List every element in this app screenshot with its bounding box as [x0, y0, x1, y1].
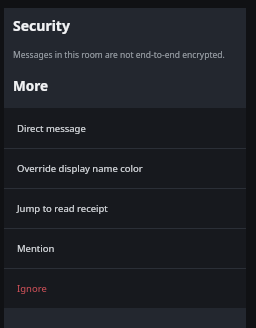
button[interactable]: Ignore — [4, 269, 246, 308]
button[interactable]: Override display name color — [4, 149, 246, 188]
staticText: Security — [13, 16, 70, 35]
staticText: More — [13, 77, 48, 95]
button[interactable]: Jump to read receipt — [4, 189, 246, 228]
staticText: Direct message — [17, 122, 86, 135]
staticText: Override display name color — [17, 162, 143, 175]
button[interactable]: Mention — [4, 229, 246, 268]
staticText: Mention — [17, 242, 55, 255]
staticText: Jump to read receipt — [17, 202, 108, 215]
staticText: Ignore — [17, 282, 47, 295]
staticText: Messages in this room are not end-to-end… — [13, 49, 225, 61]
button[interactable]: Direct message — [4, 108, 246, 148]
